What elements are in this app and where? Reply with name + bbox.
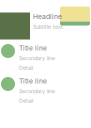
- button[interactable]: Title line: [0, 40, 91, 73]
- staticText: Secondary line: [19, 55, 55, 62]
- staticText: Detail: [19, 97, 33, 104]
- staticText: Headline: [33, 12, 62, 21]
- staticText: Secondary line: [19, 88, 55, 95]
- staticText: Title line: [19, 77, 47, 85]
- staticText: Detail: [19, 64, 33, 71]
- button[interactable]: Title line: [0, 73, 91, 106]
- staticText: Subtitle text: [33, 24, 63, 30]
- staticText: Title line: [19, 44, 47, 52]
